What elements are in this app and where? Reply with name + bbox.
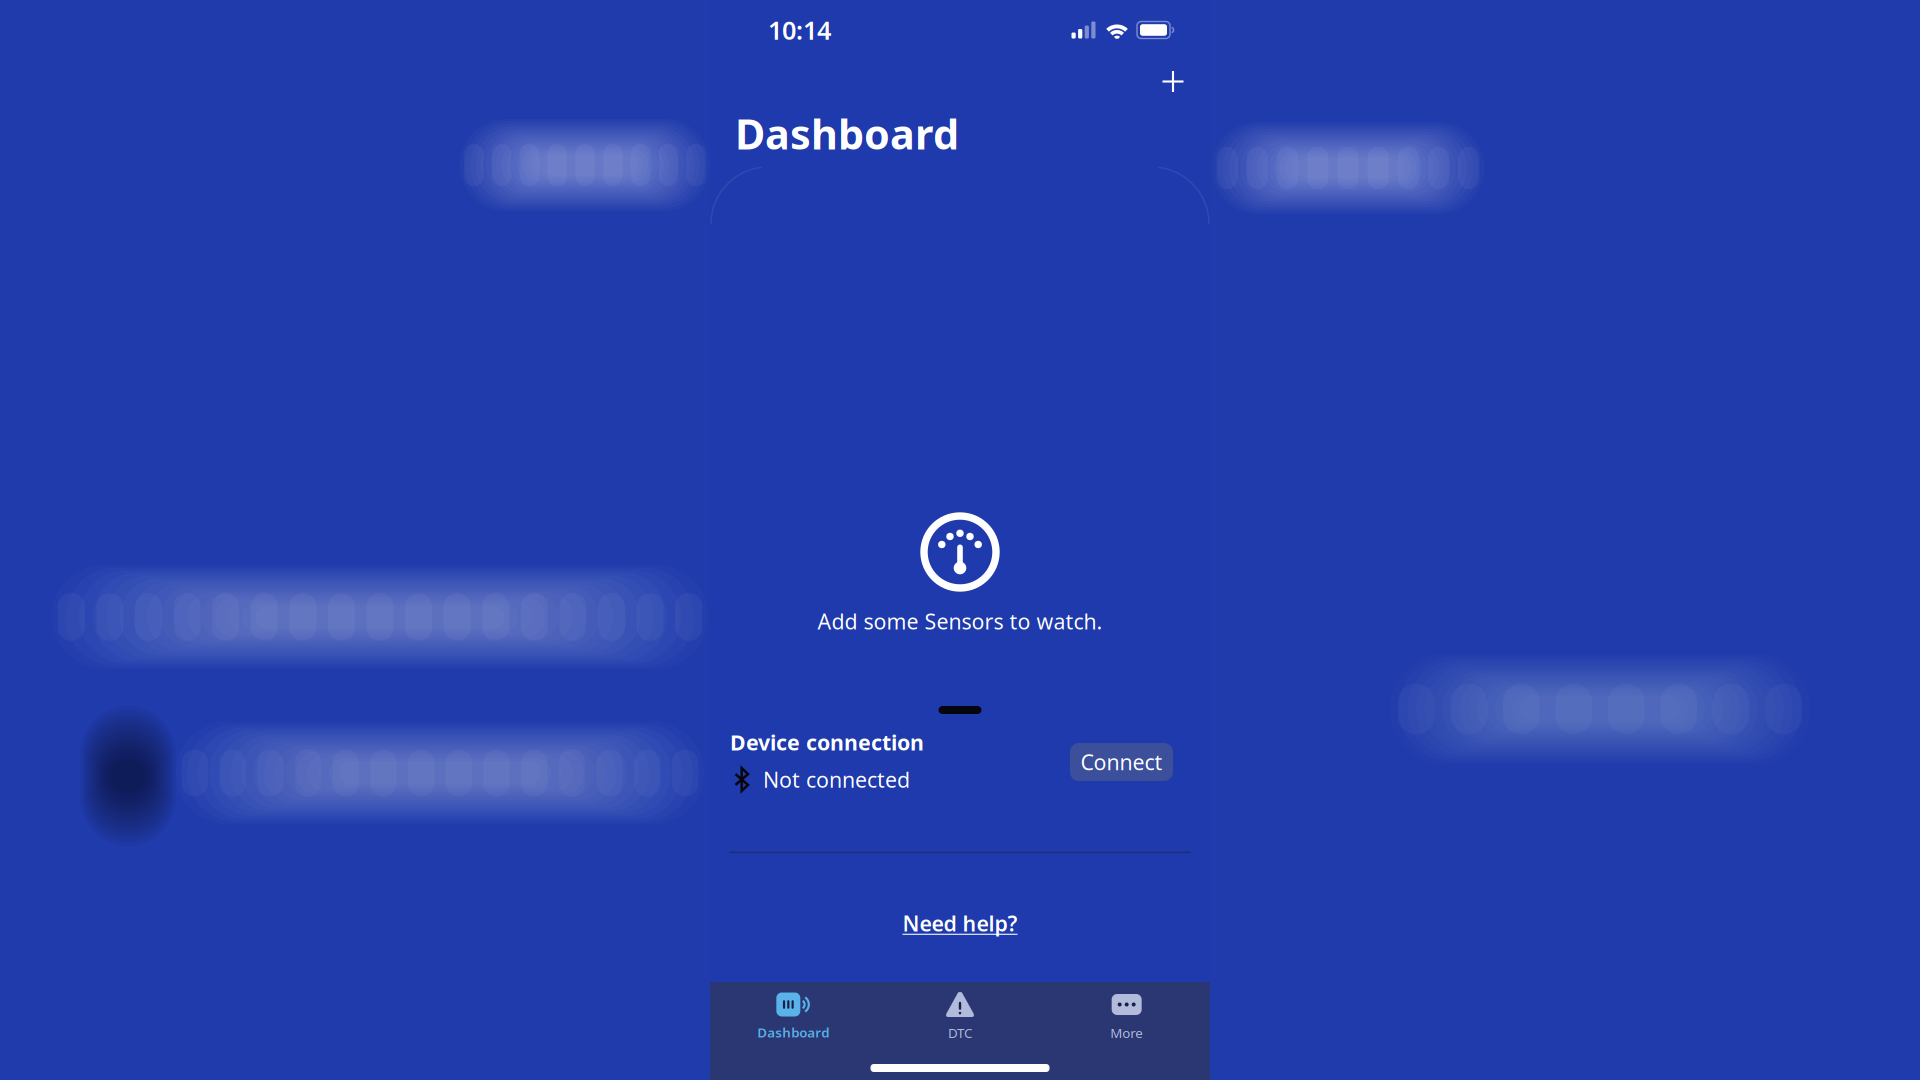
staticText: Not connected: [763, 765, 910, 794]
staticText: Need help?: [902, 909, 1017, 937]
button[interactable]: Dashboard: [710, 986, 877, 1046]
staticText: Dashboard: [757, 1023, 829, 1041]
staticText: 10:14: [768, 13, 831, 47]
staticText: Device connection: [730, 728, 924, 756]
button[interactable]: More: [1043, 986, 1210, 1047]
button[interactable]: DTC: [877, 986, 1043, 1047]
staticText: Add some Sensors to watch.: [817, 607, 1102, 635]
staticText: Dashboard: [735, 106, 959, 161]
button[interactable]: Connect: [1070, 743, 1173, 781]
staticText: DTC: [948, 1024, 972, 1042]
button[interactable]: Need help?: [882, 898, 1037, 948]
staticText: Connect: [1080, 748, 1162, 776]
button[interactable]: Add: [1151, 59, 1195, 103]
staticText: More: [1110, 1024, 1143, 1042]
